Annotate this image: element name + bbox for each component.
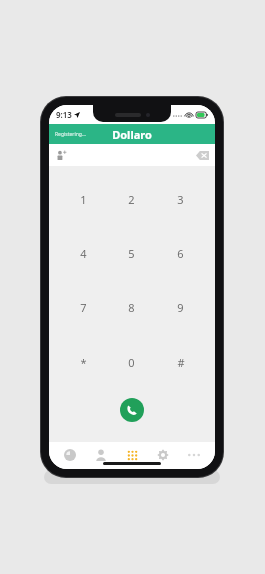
button[interactable]: Backspace xyxy=(194,148,210,162)
staticText: 6 xyxy=(177,246,184,261)
button[interactable]: Keypad xyxy=(118,446,146,464)
button[interactable]: * xyxy=(59,335,107,390)
staticText: 7 xyxy=(80,300,87,315)
staticText: # xyxy=(177,355,185,370)
button[interactable]: Settings xyxy=(149,446,177,464)
staticText: Registering... xyxy=(55,131,86,138)
staticText: * xyxy=(80,355,87,370)
staticText: 9:13 xyxy=(56,109,72,120)
staticText: 0 xyxy=(128,355,135,370)
button[interactable]: 1 xyxy=(59,172,107,226)
staticText: Dollaro xyxy=(112,127,152,142)
button[interactable]: Contacts xyxy=(87,446,115,464)
button[interactable]: 9 xyxy=(156,280,205,335)
staticText: 5 xyxy=(128,246,135,261)
button[interactable]: 7 xyxy=(59,280,107,335)
button[interactable]: More xyxy=(180,446,208,464)
staticText: 8 xyxy=(128,300,135,315)
button[interactable]: 4 xyxy=(59,226,107,280)
staticText: 1 xyxy=(80,192,87,207)
button[interactable]: 0 xyxy=(107,335,156,390)
button[interactable]: Recents xyxy=(56,446,84,464)
staticText: 3 xyxy=(177,192,184,207)
button[interactable]: 2 xyxy=(107,172,156,226)
button[interactable]: 8 xyxy=(107,280,156,335)
staticText: 9 xyxy=(177,300,184,315)
button[interactable]: Add contact xyxy=(53,147,69,163)
staticText: 4 xyxy=(80,246,87,261)
staticText: 2 xyxy=(128,192,135,207)
button[interactable]: 6 xyxy=(156,226,205,280)
button[interactable]: Call xyxy=(120,398,144,422)
button[interactable]: 5 xyxy=(107,226,156,280)
button[interactable]: 3 xyxy=(156,172,205,226)
button[interactable]: # xyxy=(156,335,205,390)
